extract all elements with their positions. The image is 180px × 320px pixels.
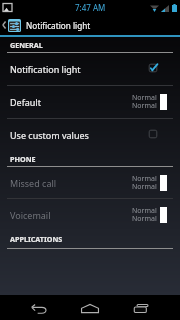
button[interactable]: Use custom values: [0, 119, 180, 150]
staticText: 7:47 AM: [75, 2, 106, 13]
button[interactable]: Notification light: [0, 53, 180, 85]
button[interactable]: Recent apps: [115, 295, 167, 320]
staticText: Normal: [132, 174, 157, 184]
staticText: Notification light: [10, 63, 148, 75]
staticText: Default: [10, 96, 132, 108]
staticText: Normal: [132, 182, 157, 192]
staticText: APPLICATIONS: [10, 234, 63, 244]
staticText: Normal: [132, 214, 157, 224]
button[interactable]: Back: [12, 295, 64, 320]
staticText: Voicemail: [10, 209, 132, 221]
staticText: Use custom values: [10, 129, 148, 141]
staticText: Normal: [132, 206, 157, 216]
button[interactable]: Missed call: [0, 167, 180, 198]
staticText: GENERAL: [10, 40, 43, 50]
button[interactable]: Home: [64, 295, 116, 320]
staticText: Normal: [132, 93, 157, 103]
staticText: Notification light: [26, 20, 91, 31]
staticText: Normal: [132, 101, 157, 111]
staticText: PHONE: [10, 154, 36, 164]
button[interactable]: Voicemail: [0, 199, 180, 230]
button[interactable]: Up: [0, 15, 180, 35]
button[interactable]: Default: [0, 86, 180, 118]
staticText: Missed call: [10, 177, 132, 189]
